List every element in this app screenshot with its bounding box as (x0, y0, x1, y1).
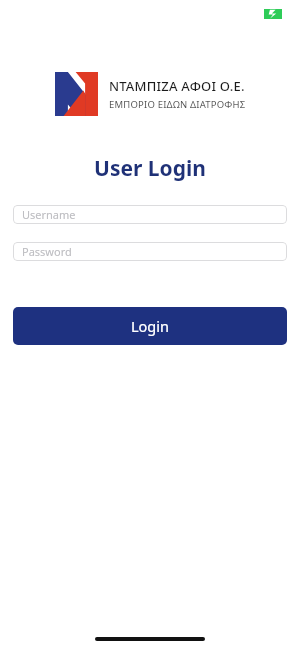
staticText: User Login (0, 154, 300, 183)
button[interactable]: Username (13, 205, 287, 224)
staticText: ΝΤΑΜΠΙΖΑ ΑΦΟΙ Ο.Ε. (109, 77, 245, 95)
other: Battery charging (264, 9, 282, 19)
staticText: Login (131, 316, 169, 336)
staticText: ΕΜΠΟΡΙΟ ΕΙΔΩΝ ΔΙΑΤΡΟΦΗΣ (109, 98, 246, 111)
button[interactable]: Login (13, 307, 287, 345)
button[interactable]: Password (13, 242, 287, 261)
staticText: Username (22, 207, 76, 222)
staticText: Password (22, 244, 72, 259)
